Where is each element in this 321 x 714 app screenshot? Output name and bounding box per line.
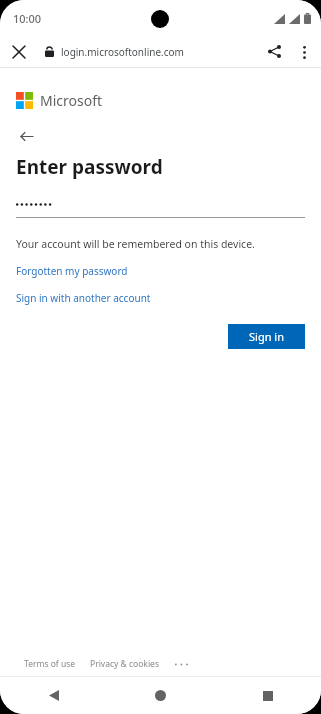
button[interactable]: login.microsoftonline.com — [33, 36, 258, 67]
button[interactable]: Back — [0, 677, 107, 714]
staticText: Microsoft — [40, 91, 103, 110]
staticText: Your account will be remembered on this … — [16, 237, 255, 251]
button[interactable] — [16, 197, 305, 211]
button[interactable]: Recent apps — [214, 677, 321, 714]
button[interactable]: More options — [290, 38, 318, 66]
button[interactable]: Close tab — [5, 38, 33, 66]
staticText: Sign in — [249, 329, 284, 344]
button[interactable]: Privacy & cookies — [90, 658, 159, 670]
button[interactable]: Forgotten my password — [16, 264, 128, 278]
staticText: 10:00 — [13, 11, 42, 26]
button[interactable]: More links — [172, 657, 190, 671]
button[interactable]: Sign in with another account — [16, 291, 151, 305]
button[interactable]: Back — [13, 123, 39, 149]
staticText: login.microsoftonline.com — [61, 45, 184, 59]
button[interactable]: Terms of use — [24, 658, 76, 670]
staticText: Enter password — [16, 154, 163, 180]
button[interactable]: Sign in — [228, 324, 305, 349]
button[interactable]: Home — [107, 677, 214, 714]
button[interactable]: Share — [258, 36, 290, 67]
